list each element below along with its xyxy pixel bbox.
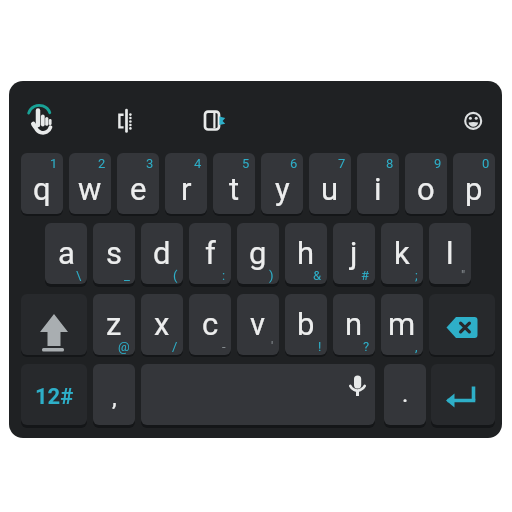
staticText: 6 — [290, 156, 298, 171]
staticText: ( — [173, 268, 178, 283]
staticText: " — [461, 268, 466, 283]
staticText: q — [33, 171, 51, 207]
staticText: v — [250, 306, 266, 342]
staticText: y — [275, 171, 290, 207]
staticText: z — [106, 306, 122, 342]
button[interactable]: q — [21, 153, 63, 214]
button[interactable]: v — [237, 294, 279, 355]
button[interactable] — [196, 102, 236, 138]
staticText: 9 — [434, 156, 442, 171]
staticText: , — [415, 339, 418, 354]
button[interactable]: . — [384, 364, 426, 425]
staticText: r — [181, 171, 192, 207]
staticText: # — [361, 268, 370, 283]
button[interactable] — [141, 364, 375, 425]
button[interactable] — [106, 102, 142, 138]
staticText: w — [78, 171, 102, 207]
button[interactable]: f — [189, 223, 231, 284]
staticText: m — [388, 306, 416, 342]
staticText: j — [350, 235, 358, 271]
staticText: s — [106, 235, 122, 271]
button[interactable]: k — [381, 223, 423, 284]
button[interactable] — [429, 294, 495, 355]
button[interactable]: e — [117, 153, 159, 214]
button[interactable]: t — [213, 153, 255, 214]
staticText: f — [205, 235, 216, 271]
button[interactable]: r — [165, 153, 207, 214]
button[interactable] — [455, 102, 491, 138]
button[interactable]: s — [93, 223, 135, 284]
staticText: ! — [318, 339, 322, 354]
staticText: i — [374, 171, 382, 207]
staticText: . — [402, 380, 409, 408]
button[interactable]: b — [285, 294, 327, 355]
button[interactable] — [21, 98, 65, 142]
staticText: l — [446, 235, 454, 271]
staticText: n — [345, 306, 363, 342]
button[interactable]: j — [333, 223, 375, 284]
button[interactable]: z — [93, 294, 135, 355]
button[interactable]: g — [237, 223, 279, 284]
staticText: \ — [76, 268, 82, 283]
button[interactable]: l — [429, 223, 471, 284]
button[interactable]: m — [381, 294, 423, 355]
staticText: 2 — [98, 156, 106, 171]
button[interactable]: a — [45, 223, 87, 284]
button[interactable]: h — [285, 223, 327, 284]
button[interactable]: x — [141, 294, 183, 355]
staticText: g — [249, 235, 267, 271]
staticText: _ — [124, 268, 130, 283]
button[interactable]: o — [405, 153, 447, 214]
button[interactable]: 12# — [21, 364, 87, 425]
button[interactable]: w — [69, 153, 111, 214]
staticText: b — [297, 306, 315, 342]
staticText: 7 — [338, 156, 346, 171]
staticText: t — [229, 171, 240, 207]
staticText: x — [154, 306, 170, 342]
staticText: ? — [363, 339, 370, 354]
button[interactable]: u — [309, 153, 351, 214]
staticText: ; — [415, 268, 418, 283]
staticText: ' — [271, 339, 274, 354]
staticText: o — [417, 171, 435, 207]
staticText: 3 — [146, 156, 154, 171]
staticText: u — [321, 171, 339, 207]
staticText: & — [313, 268, 322, 283]
button[interactable] — [431, 364, 495, 425]
staticText: 12# — [35, 384, 74, 410]
staticText: @ — [118, 339, 130, 354]
staticText: 1 — [50, 156, 58, 171]
button[interactable]: c — [189, 294, 231, 355]
staticText: - — [222, 339, 226, 354]
staticText: : — [222, 268, 226, 283]
staticText: k — [394, 235, 410, 271]
staticText: p — [465, 171, 483, 207]
staticText: c — [202, 306, 219, 342]
button[interactable]: y — [261, 153, 303, 214]
button[interactable] — [21, 294, 87, 355]
staticText: / — [172, 339, 178, 354]
button[interactable]: n — [333, 294, 375, 355]
staticText: 4 — [194, 156, 202, 171]
staticText: a — [58, 235, 75, 271]
staticText: 0 — [482, 156, 490, 171]
staticText: , — [112, 384, 117, 412]
staticText: d — [153, 235, 171, 271]
staticText: ) — [269, 268, 274, 283]
button[interactable]: i — [357, 153, 399, 214]
staticText: e — [130, 171, 147, 207]
staticText: 8 — [386, 156, 394, 171]
button[interactable]: d — [141, 223, 183, 284]
staticText: 5 — [242, 156, 250, 171]
button[interactable]: p — [453, 153, 495, 214]
button[interactable]: , — [93, 364, 135, 425]
staticText: h — [297, 235, 315, 271]
